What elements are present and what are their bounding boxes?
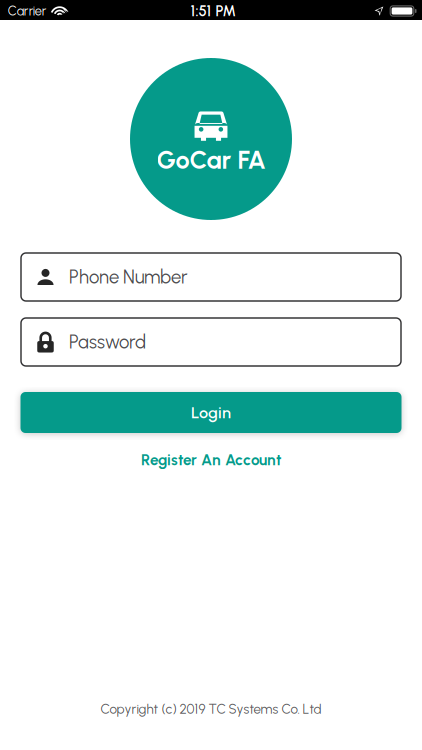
staticText: Phone Number: [69, 266, 188, 288]
staticText: Copyright (c) 2019 TC Systems Co. Ltd: [100, 701, 321, 717]
staticText: GoCar FA: [156, 145, 265, 175]
staticText: Register An Account: [141, 451, 281, 469]
staticText: 1:51 PM: [190, 2, 235, 20]
button[interactable]: Register An Account: [141, 451, 281, 469]
staticText: Login: [191, 403, 231, 422]
staticText: Password: [69, 331, 146, 353]
button[interactable]: Login: [20, 392, 401, 433]
staticText: Carrier: [8, 3, 47, 19]
